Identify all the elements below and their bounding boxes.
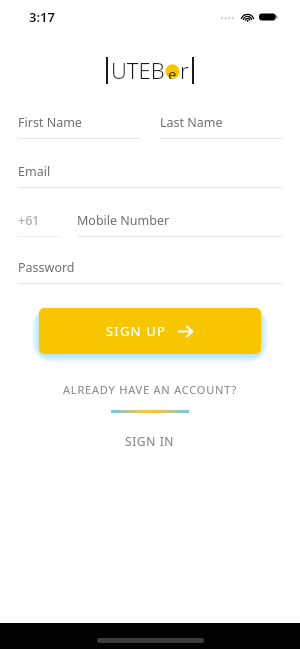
staticText: SIGN UP bbox=[106, 322, 167, 340]
button[interactable]: Email bbox=[18, 163, 282, 188]
staticText: Last Name bbox=[160, 114, 223, 131]
staticText: 3:17 bbox=[29, 8, 55, 26]
button[interactable]: Mobile Number bbox=[77, 212, 282, 237]
button[interactable]: Country code bbox=[18, 212, 61, 237]
staticText: Mobile Number bbox=[77, 212, 170, 229]
staticText: SIGN IN bbox=[125, 433, 175, 449]
staticText: e bbox=[168, 64, 177, 79]
button[interactable]: SIGN IN bbox=[0, 429, 300, 453]
staticText: Email bbox=[18, 163, 51, 180]
staticText: r bbox=[180, 55, 189, 85]
button[interactable]: Password bbox=[18, 259, 282, 284]
button[interactable]: Last Name bbox=[160, 114, 282, 139]
staticText: +61 bbox=[18, 212, 40, 229]
staticText: ALREADY HAVE AN ACCOUNT? bbox=[0, 382, 300, 397]
button[interactable]: SIGN UP bbox=[39, 308, 261, 354]
staticText: UTEB bbox=[111, 55, 165, 85]
staticText: First Name bbox=[18, 114, 82, 131]
button[interactable]: First Name bbox=[18, 114, 140, 139]
staticText: Password bbox=[18, 259, 75, 276]
